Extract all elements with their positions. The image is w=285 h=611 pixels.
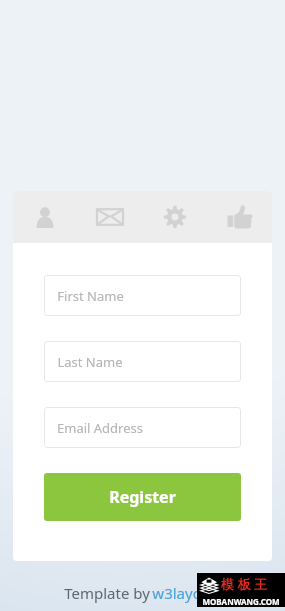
button[interactable]: Last Name (44, 341, 241, 382)
staticText: MOBANWANG.COM (202, 596, 280, 607)
button[interactable]: Profile (13, 191, 77, 243)
button[interactable]: Email Address (44, 407, 241, 448)
staticText: Last Name (57, 353, 123, 371)
staticText: w3layouts (152, 583, 224, 603)
staticText: Register (109, 486, 176, 508)
button[interactable]: w3layouts (152, 583, 224, 603)
staticText: First Name (57, 287, 124, 305)
staticText: 模 板 王 (221, 575, 267, 593)
button[interactable]: Settings (142, 191, 207, 243)
staticText: Email Address (57, 419, 143, 437)
button[interactable]: First Name (44, 275, 241, 316)
button[interactable]: Messages (77, 191, 142, 243)
button[interactable]: Register (44, 473, 241, 521)
button[interactable]: Like (207, 191, 272, 243)
staticText: Template by (62, 583, 152, 603)
